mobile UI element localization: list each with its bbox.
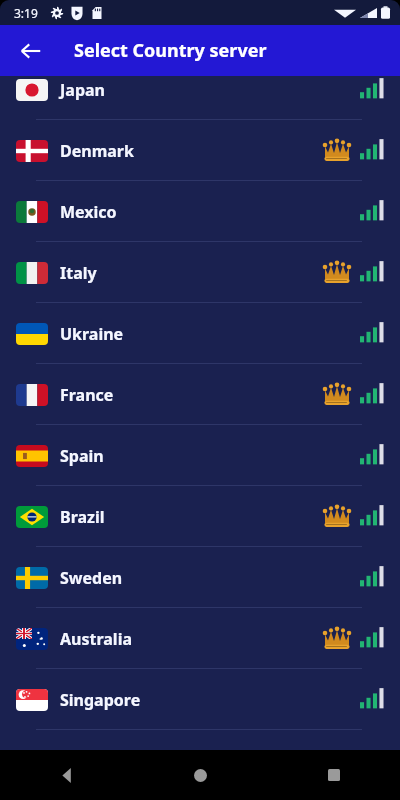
staticText: Ukraine bbox=[60, 323, 124, 345]
button[interactable]: Spain bbox=[0, 425, 400, 486]
button[interactable]: Sweden bbox=[0, 547, 400, 608]
staticText: France bbox=[60, 384, 114, 406]
button[interactable]: Back bbox=[0, 750, 134, 800]
button[interactable]: Italy bbox=[0, 242, 400, 303]
button[interactable]: Japan bbox=[0, 59, 400, 120]
button[interactable]: Premium server bbox=[322, 138, 352, 164]
button[interactable]: Premium server bbox=[322, 382, 352, 408]
staticText: Denmark bbox=[60, 140, 134, 162]
button[interactable]: Singapore bbox=[0, 669, 400, 730]
button[interactable]: Home bbox=[134, 750, 267, 800]
button[interactable]: Premium server bbox=[322, 504, 352, 530]
button[interactable]: Brazil bbox=[0, 486, 400, 547]
staticText: Singapore bbox=[60, 689, 141, 711]
button[interactable]: Ukraine bbox=[0, 303, 400, 364]
staticText: Sweden bbox=[60, 567, 123, 589]
button[interactable]: France bbox=[0, 364, 400, 425]
staticText: 3:19 bbox=[14, 5, 38, 21]
staticText: Brazil bbox=[60, 506, 105, 528]
staticText: Mexico bbox=[60, 201, 117, 223]
staticText: Japan bbox=[60, 79, 105, 101]
button[interactable]: Premium server bbox=[322, 626, 352, 652]
button[interactable]: Premium server bbox=[322, 260, 352, 286]
button[interactable]: Recent apps bbox=[267, 750, 400, 800]
button[interactable]: Australia bbox=[0, 608, 400, 669]
staticText: Spain bbox=[60, 445, 104, 467]
staticText: Select Country server bbox=[74, 38, 267, 63]
button[interactable]: Back bbox=[10, 30, 52, 72]
staticText: Australia bbox=[60, 628, 133, 650]
button[interactable]: Mexico bbox=[0, 181, 400, 242]
button[interactable]: Denmark bbox=[0, 120, 400, 181]
staticText: Italy bbox=[60, 262, 97, 284]
